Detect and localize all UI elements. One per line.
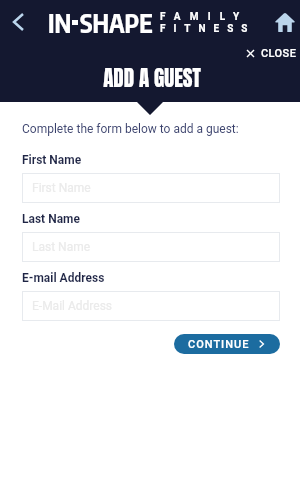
staticText: First Name: [32, 181, 91, 195]
staticText: CLOSE: [261, 47, 297, 60]
staticText: E-Mail Address: [32, 299, 113, 313]
button[interactable]: Home: [272, 9, 298, 35]
button[interactable]: CONTINUE: [174, 334, 280, 354]
staticText: Complete the form below to add a guest:: [22, 122, 239, 136]
staticText: SHAPE: [80, 7, 153, 38]
button[interactable]: E-Mail Address: [22, 291, 280, 321]
button[interactable]: CLOSE: [245, 45, 299, 62]
staticText: First Name: [22, 153, 82, 167]
staticText: IN: [48, 7, 72, 38]
button[interactable]: Back: [6, 10, 30, 34]
staticText: E-mail Address: [22, 271, 105, 285]
staticText: CONTINUE: [188, 338, 250, 351]
staticText: Last Name: [22, 212, 80, 226]
button[interactable]: First Name: [22, 173, 280, 203]
staticText: ADD A GUEST: [103, 62, 201, 94]
button[interactable]: Last Name: [22, 232, 280, 262]
staticText: Last Name: [32, 240, 91, 254]
staticText: FITNESS: [160, 23, 256, 35]
staticText: FAMILY: [160, 11, 249, 23]
